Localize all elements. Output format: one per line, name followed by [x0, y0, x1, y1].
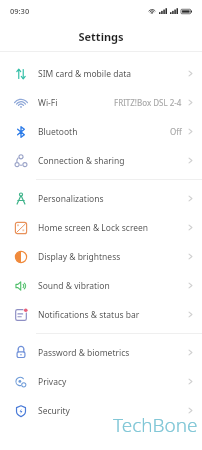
button[interactable]: Password & biometrics	[0, 338, 202, 367]
staticText: Password & biometrics	[38, 347, 130, 359]
button[interactable]: Display & brightness	[0, 242, 202, 271]
staticText: Home screen & Lock screen	[38, 222, 149, 234]
staticText: Personalizations	[38, 193, 104, 205]
staticText: 09:30	[10, 6, 30, 16]
button[interactable]: Notifications & status bar	[0, 300, 202, 329]
staticText: Bluetooth	[38, 126, 78, 138]
staticText: Notifications & status bar	[38, 309, 140, 321]
staticText: Sound & vibration	[38, 280, 110, 292]
button[interactable]: Security	[0, 396, 202, 425]
button[interactable]: Sound & vibration	[0, 271, 202, 300]
staticText: Security	[38, 405, 70, 417]
staticText: Connection & sharing	[38, 155, 125, 167]
staticText: TechBone	[113, 412, 198, 438]
button[interactable]: Personalizations	[0, 184, 202, 213]
staticText: SIM card & mobile data	[38, 68, 132, 80]
staticText: Display & brightness	[38, 251, 121, 263]
button[interactable]: Home screen & Lock screen	[0, 213, 202, 242]
staticText: Off	[170, 126, 182, 137]
staticText: Wi-Fi	[38, 97, 58, 109]
button[interactable]: Bluetooth	[0, 117, 202, 146]
button[interactable]: Privacy	[0, 367, 202, 396]
staticText: Privacy	[38, 376, 67, 388]
button[interactable]: Wi-Fi	[0, 88, 202, 117]
staticText: FRITZ!Box DSL 2-4	[114, 97, 182, 108]
button[interactable]: SIM card & mobile data	[0, 59, 202, 88]
button[interactable]: Connection & sharing	[0, 146, 202, 175]
staticText: Settings	[78, 29, 124, 44]
